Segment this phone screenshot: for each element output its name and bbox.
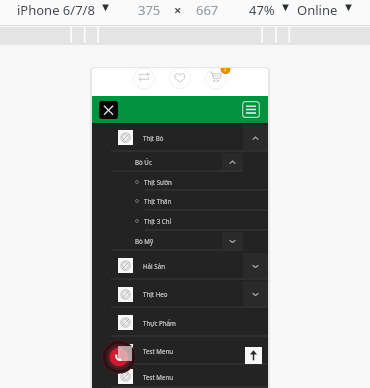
- button[interactable]: Test Menu: [92, 365, 268, 388]
- button[interactable]: Thịt Heo: [92, 280, 268, 308]
- staticText: Test Menu: [143, 373, 174, 381]
- staticText: Thịt Bò: [143, 134, 164, 142]
- button[interactable]: Expand: [243, 253, 268, 279]
- staticText: Thực Phẩm: [143, 319, 176, 327]
- button[interactable]: Collapse: [222, 153, 243, 171]
- button[interactable]: 47%: [249, 0, 289, 22]
- button[interactable]: Thịt Thăn: [112, 191, 243, 211]
- button[interactable]: Bò Mỹ: [112, 231, 243, 251]
- staticText: Thịt Sườn: [144, 178, 172, 186]
- button[interactable]: Online: [297, 0, 352, 22]
- staticText: Test Menu: [143, 347, 174, 355]
- button[interactable]: Thịt Sườn: [112, 172, 243, 191]
- staticText: Hải Sản: [143, 262, 165, 270]
- staticText: Bò Mỹ: [135, 237, 154, 245]
- staticText: Thịt 3 Chỉ: [144, 217, 172, 225]
- button[interactable]: iPhone 6/7/8: [17, 0, 109, 22]
- staticText: iPhone 6/7/8: [17, 1, 95, 19]
- button[interactable]: Call: [101, 339, 137, 375]
- staticText: Thịt Heo: [143, 290, 168, 298]
- staticText: Thịt Thăn: [144, 197, 172, 205]
- staticText: Bò Úc: [135, 158, 152, 166]
- button[interactable]: Expand: [222, 232, 243, 250]
- button[interactable]: Thực Phẩm: [92, 308, 268, 337]
- button[interactable]: Menu: [242, 101, 260, 118]
- button[interactable]: Scroll to top: [245, 347, 262, 364]
- staticText: Online: [297, 1, 338, 19]
- button[interactable]: Collapse: [243, 125, 268, 151]
- staticText: ×: [174, 1, 182, 19]
- staticText: 47%: [249, 1, 275, 19]
- staticText: 375: [138, 1, 161, 19]
- button[interactable]: Bò Úc: [112, 152, 243, 172]
- button[interactable]: Expand: [243, 281, 268, 307]
- button[interactable]: Test Menu: [92, 337, 268, 365]
- button[interactable]: Hải Sản: [92, 251, 268, 280]
- button[interactable]: Thịt 3 Chỉ: [112, 211, 243, 231]
- button[interactable]: Thịt Bò: [92, 123, 268, 152]
- button[interactable]: Close: [99, 101, 118, 119]
- staticText: 667: [196, 1, 219, 19]
